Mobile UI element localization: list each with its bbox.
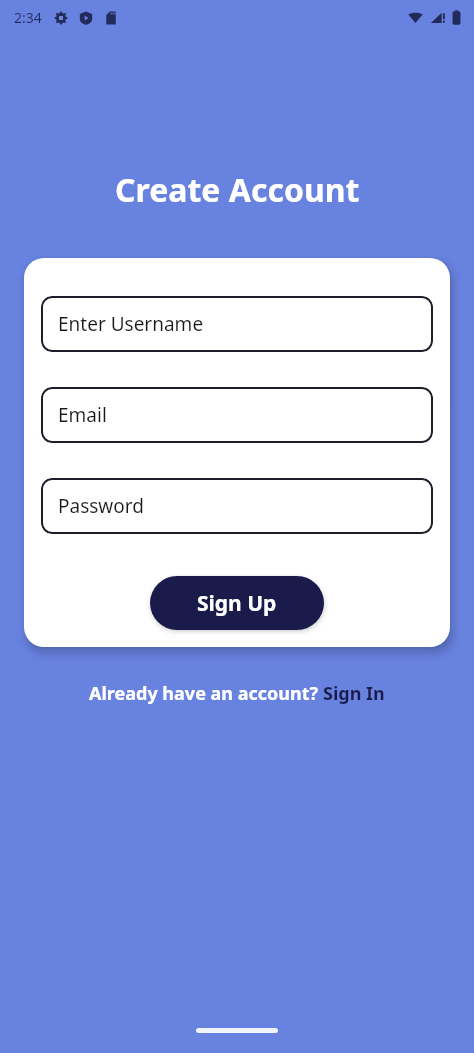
staticText: Sign Up [197, 589, 277, 618]
staticText: Password [58, 493, 144, 519]
button[interactable]: Sign Up [150, 576, 324, 630]
staticText: Enter Username [58, 311, 204, 337]
button[interactable]: Email [41, 387, 433, 443]
button[interactable]: Password [41, 478, 433, 534]
staticText: Already have an account? [89, 681, 323, 706]
button[interactable]: Already have an account? [83, 679, 391, 708]
staticText: 2:34 [14, 8, 42, 27]
staticText: Sign In [323, 681, 385, 706]
staticText: Create Account [115, 168, 360, 212]
button[interactable]: Enter Username [41, 296, 433, 352]
staticText: Email [58, 402, 107, 428]
